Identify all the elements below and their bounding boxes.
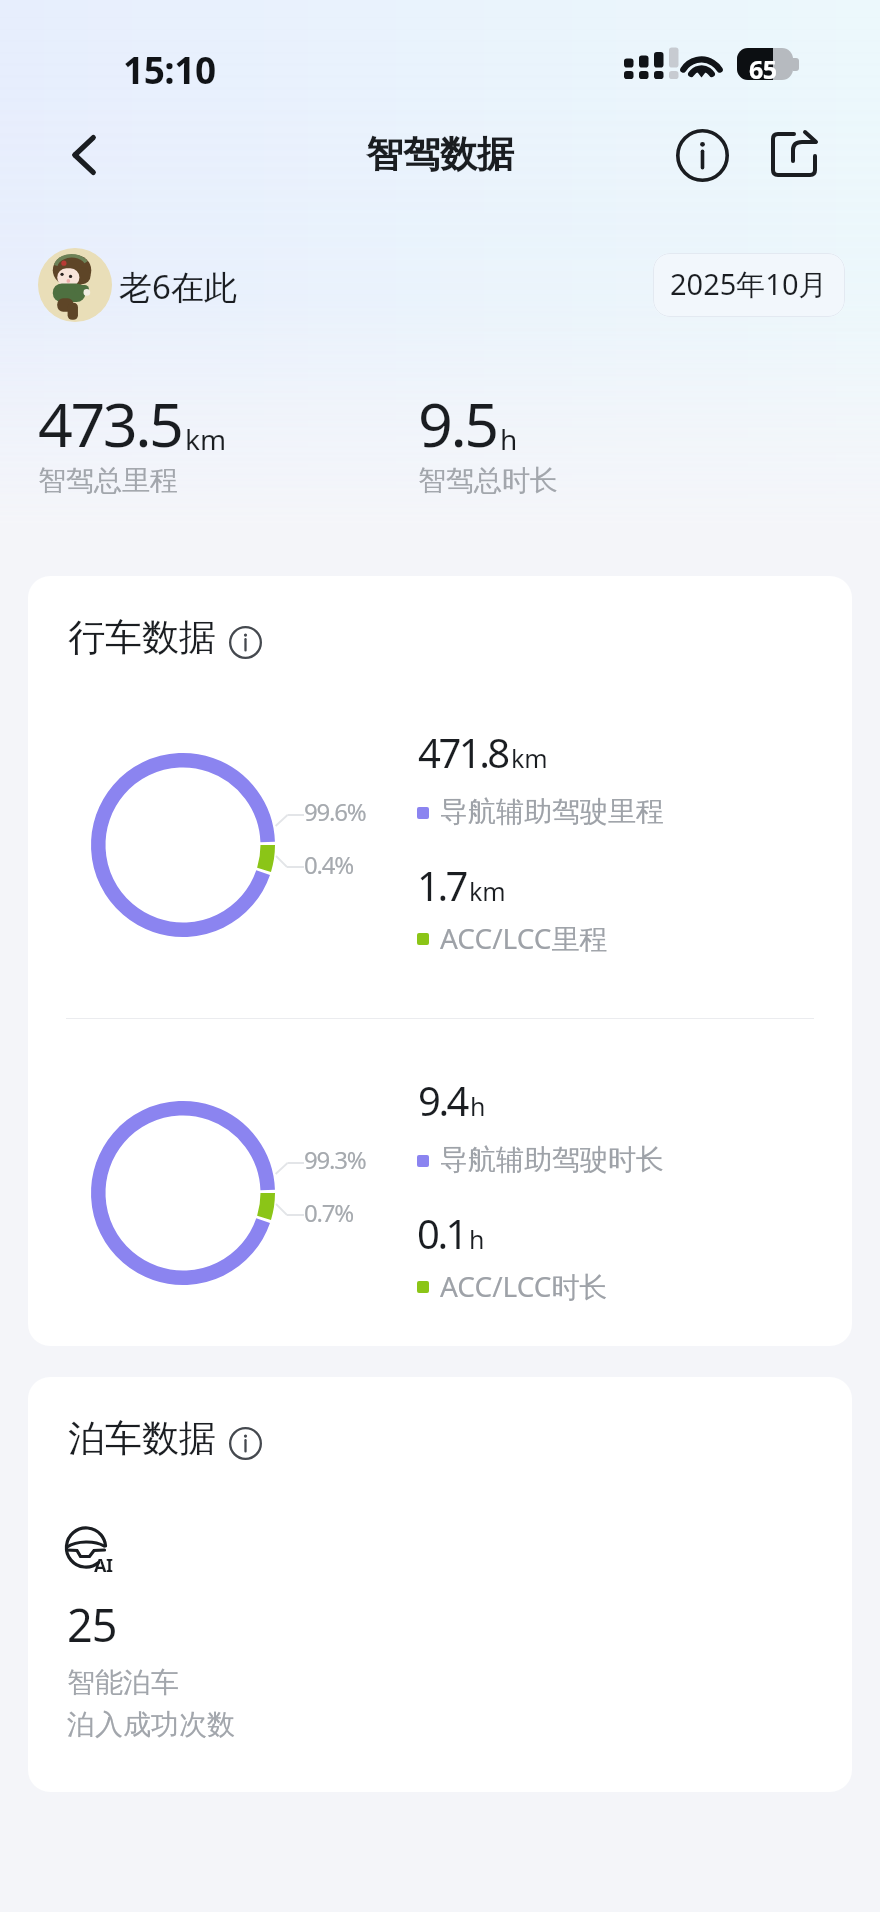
staticText: 471.8 — [418, 725, 508, 779]
staticText: km — [511, 741, 548, 775]
staticText: 智驾总时长 — [418, 463, 558, 498]
staticText: 泊车数据 — [68, 1415, 216, 1462]
staticText: 智驾总里程 — [38, 463, 178, 498]
staticText: 9.5 — [418, 382, 497, 465]
staticText: 9.4 — [418, 1073, 467, 1127]
staticText: 老6在此 — [119, 264, 237, 309]
button[interactable]: Info — [666, 119, 738, 191]
staticText: 智能泊车 — [67, 1665, 179, 1700]
staticText: 25 — [67, 1594, 117, 1655]
staticText: 1.7 — [417, 858, 466, 912]
staticText: 473.5 — [38, 382, 182, 465]
button[interactable]: 2025年10月 — [653, 253, 845, 317]
staticText: AI — [94, 1553, 113, 1578]
button[interactable]: Share — [759, 119, 831, 191]
staticText: 智驾数据 — [366, 131, 514, 178]
staticText: 0.4% — [304, 848, 354, 881]
staticText: h — [470, 1089, 486, 1123]
staticText: 导航辅助驾驶里程 — [440, 794, 664, 829]
staticText: 2025年10月 — [670, 264, 828, 304]
staticText: 99.3% — [304, 1143, 366, 1176]
staticText: 65 — [749, 52, 777, 84]
staticText: 行车数据 — [68, 614, 216, 661]
staticText: 0.7% — [304, 1196, 354, 1229]
staticText: 泊入成功次数 — [67, 1707, 235, 1742]
staticText: 0.1 — [417, 1206, 466, 1260]
staticText: km — [185, 420, 227, 458]
button[interactable]: Back — [48, 118, 122, 192]
staticText: 15:10 — [123, 44, 216, 94]
staticText: km — [469, 874, 506, 908]
staticText: ACC/LCC里程 — [440, 919, 608, 957]
staticText: h — [500, 420, 518, 458]
staticText: ACC/LCC时长 — [440, 1267, 608, 1305]
staticText: h — [469, 1222, 485, 1256]
staticText: 导航辅助驾驶时长 — [440, 1142, 664, 1177]
staticText: 99.6% — [304, 795, 366, 828]
